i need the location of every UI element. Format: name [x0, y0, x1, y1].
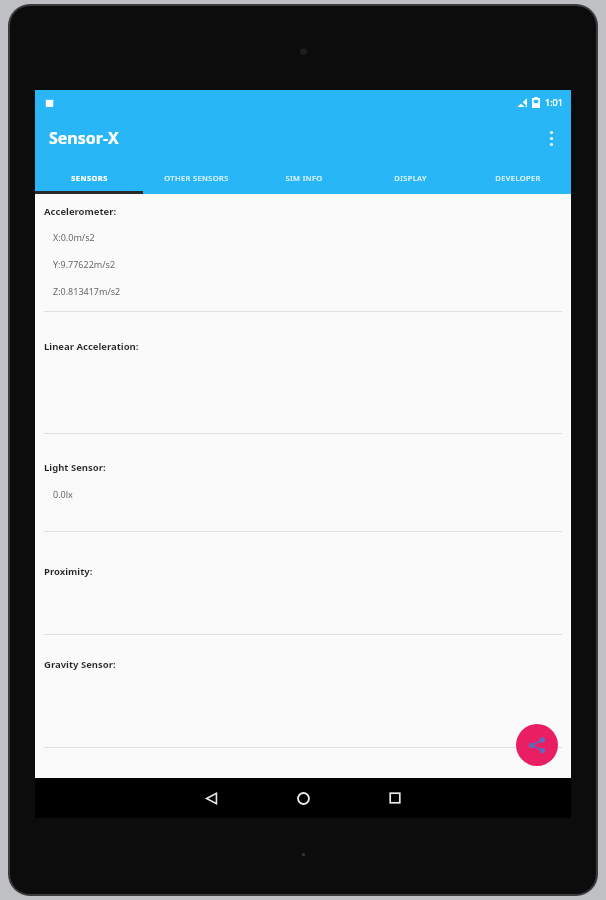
- button[interactable]: Recent apps: [368, 778, 422, 818]
- staticText: SENSORS: [71, 173, 108, 183]
- staticText: SIM INFO: [285, 173, 323, 183]
- button[interactable]: Gyroscope:: [35, 748, 571, 778]
- staticText: Z:0.813417m/s2: [53, 285, 121, 297]
- staticText: Gravity Sensor:: [44, 658, 116, 671]
- staticText: Light Sensor:: [44, 461, 106, 474]
- staticText: 0.0lx: [53, 488, 73, 500]
- button[interactable]: Gravity Sensor:: [35, 635, 571, 748]
- button[interactable]: SENSORS: [35, 162, 143, 194]
- staticText: Y:9.77622m/s2: [53, 258, 116, 270]
- button[interactable]: More options: [531, 118, 571, 158]
- button[interactable]: Back: [184, 778, 238, 818]
- button[interactable]: SIM INFO: [250, 162, 357, 194]
- button[interactable]: OTHER SENSORS: [143, 162, 250, 194]
- staticText: DISPLAY: [394, 173, 427, 183]
- button[interactable]: DISPLAY: [357, 162, 464, 194]
- staticText: OTHER SENSORS: [164, 173, 229, 183]
- button[interactable]: Accelerometer:: [35, 194, 571, 312]
- button[interactable]: Home: [276, 778, 330, 818]
- button[interactable]: DEVELOPER: [464, 162, 571, 194]
- staticText: 1:01: [545, 96, 563, 108]
- staticText: Proximity:: [44, 565, 93, 578]
- staticText: Accelerometer:: [44, 205, 117, 218]
- staticText: X:0.0m/s2: [53, 231, 95, 243]
- button[interactable]: Light Sensor:: [35, 434, 571, 532]
- staticText: Linear Acceleration:: [44, 340, 139, 353]
- button[interactable]: Share: [516, 724, 558, 766]
- staticText: Sensor-X: [49, 127, 119, 149]
- button[interactable]: Linear Acceleration:: [35, 312, 571, 434]
- button[interactable]: Proximity:: [35, 532, 571, 635]
- staticText: DEVELOPER: [495, 173, 541, 183]
